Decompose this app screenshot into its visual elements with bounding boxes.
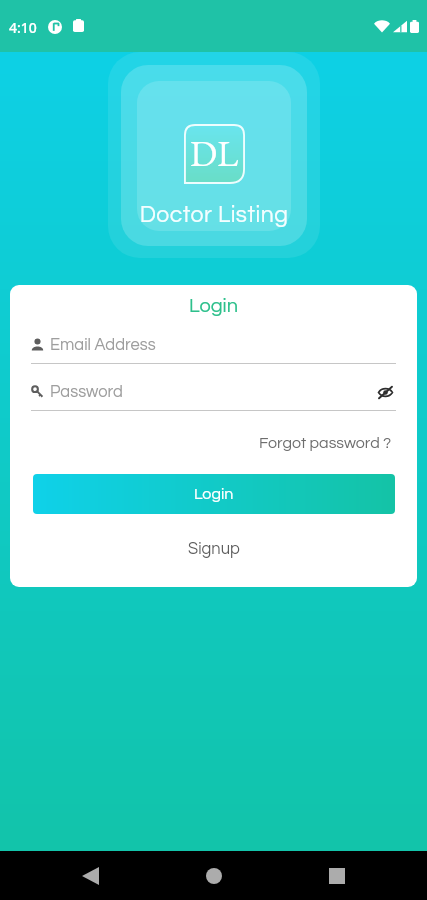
staticText: Doctor Listing	[108, 203, 320, 227]
staticText: Signup	[188, 540, 240, 557]
button[interactable]: Signup	[178, 535, 250, 562]
staticText: Forgot password ?	[259, 435, 392, 451]
staticText: Email Address	[50, 336, 156, 353]
staticText: Login	[10, 296, 417, 317]
button[interactable]: Recent apps	[313, 851, 361, 900]
staticText: DL	[190, 130, 239, 177]
button[interactable]: Forgot password ?	[253, 431, 398, 455]
staticText: Login	[194, 486, 234, 502]
staticText: 4:10	[9, 18, 37, 37]
button[interactable]: Home	[190, 851, 238, 900]
button[interactable]: Back	[66, 851, 114, 900]
button[interactable]: Show password	[374, 381, 396, 403]
staticText: Password	[50, 383, 123, 400]
button[interactable]: Login	[33, 474, 395, 514]
